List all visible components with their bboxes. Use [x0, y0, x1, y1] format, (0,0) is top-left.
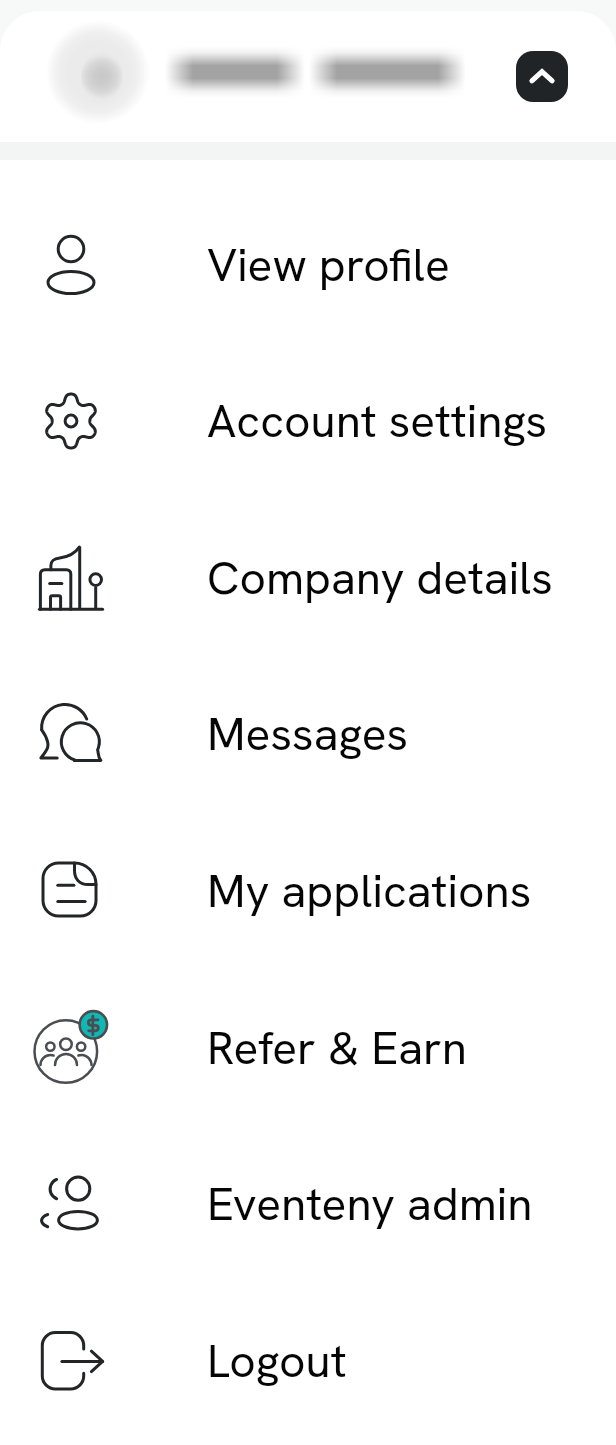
button[interactable]: Eventeny admin [0, 1125, 616, 1282]
button[interactable]: Refer & Earn [0, 969, 616, 1126]
button[interactable]: My applications [0, 812, 616, 969]
staticText: My applications [207, 861, 532, 921]
button[interactable]: Logout [0, 1282, 616, 1439]
staticText: Refer & Earn [207, 1018, 467, 1078]
button[interactable]: Messages [0, 655, 616, 812]
staticText: Logout [207, 1331, 347, 1391]
button[interactable]: Collapse menu [0, 0, 616, 141]
button[interactable]: Collapse menu [516, 51, 568, 102]
button[interactable]: View profile [0, 186, 616, 343]
button[interactable]: Company details [0, 499, 616, 656]
button[interactable]: Account settings [0, 342, 616, 499]
staticText: View profile [207, 235, 450, 295]
staticText: Company details [207, 548, 553, 608]
staticText: Messages [207, 704, 409, 764]
staticText: Account settings [207, 391, 548, 451]
staticText: Eventeny admin [207, 1174, 533, 1234]
